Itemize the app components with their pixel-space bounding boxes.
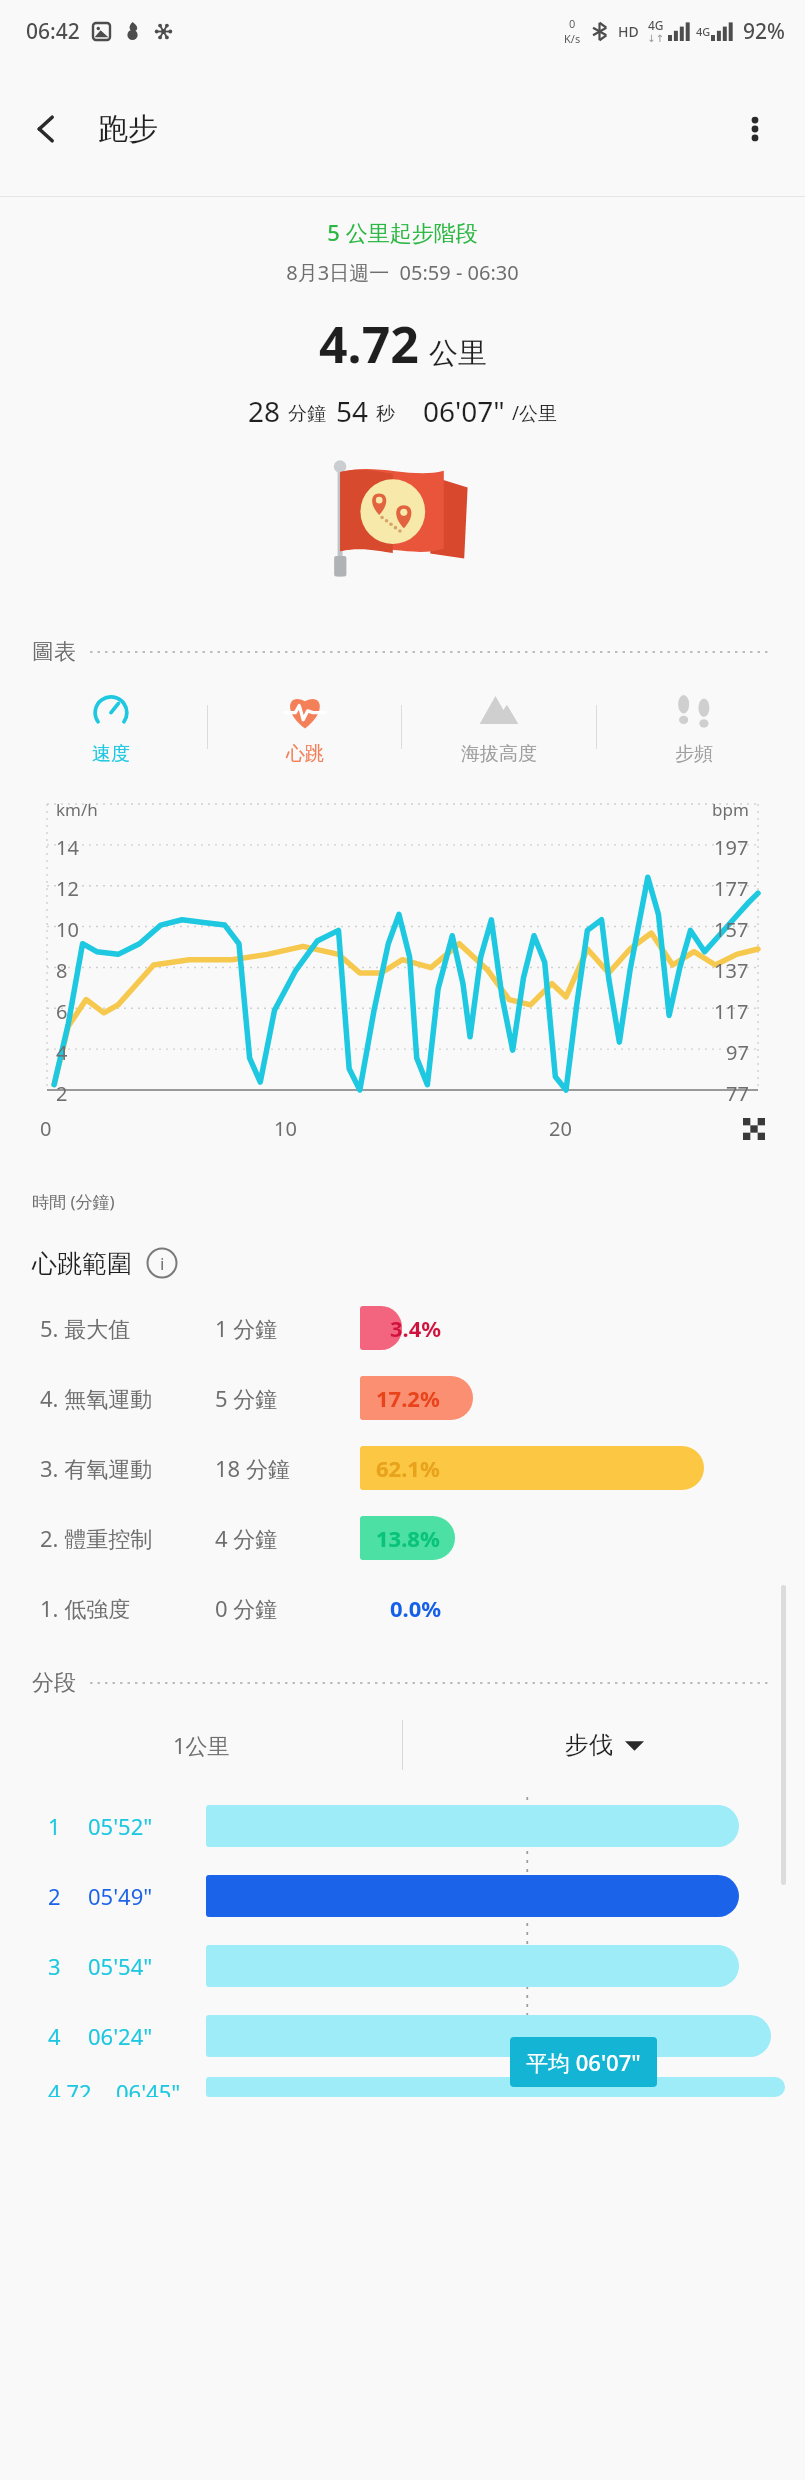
staticText: 54 xyxy=(336,392,369,430)
staticText: 0 分鐘 xyxy=(215,1593,360,1623)
staticText: 3 xyxy=(48,1951,88,1981)
staticText: ↓↑ xyxy=(647,33,664,45)
staticText: 62.1% xyxy=(376,1453,440,1483)
button[interactable]: 1公里 xyxy=(0,1705,402,1785)
staticText: 8月3日週一 05:59 - 06:30 xyxy=(0,259,805,286)
button[interactable]: Back xyxy=(16,99,76,159)
staticText: 4.72 xyxy=(319,310,419,378)
staticText: 0 xyxy=(40,1115,52,1142)
button[interactable]: 4 xyxy=(0,2007,805,2065)
staticText: 4.72 xyxy=(48,2077,116,2097)
staticText: 157 xyxy=(714,916,749,943)
staticText: 92% xyxy=(743,17,785,46)
staticText: 77 xyxy=(726,1080,749,1107)
button[interactable]: 海拔高度 xyxy=(402,682,596,772)
staticText: 速度 xyxy=(92,742,130,766)
staticText: 5. 最大值 xyxy=(40,1313,215,1343)
staticText: /公里 xyxy=(512,400,558,426)
staticText: 1 分鐘 xyxy=(215,1313,360,1343)
staticText: 4G xyxy=(648,17,664,33)
staticText: 05'49" xyxy=(88,1881,206,1911)
staticText: 137 xyxy=(714,957,749,984)
staticText: 177 xyxy=(714,875,749,902)
staticText: 06:42 xyxy=(26,17,80,46)
staticText: 5 分鐘 xyxy=(215,1383,360,1413)
staticText: 4 xyxy=(56,1039,68,1066)
button[interactable]: 速度 xyxy=(14,682,207,772)
staticText: 05'54" xyxy=(88,1951,206,1981)
staticText: 5 公里起步階段 xyxy=(0,217,805,247)
button[interactable]: 3 xyxy=(0,1937,805,1995)
staticText: 4 xyxy=(48,2021,88,2051)
staticText: 3.4% xyxy=(390,1313,442,1343)
staticText: 14 xyxy=(56,834,79,861)
staticText: 秒 xyxy=(376,402,395,426)
staticText: 05'52" xyxy=(88,1811,206,1841)
staticText: 2. 體重控制 xyxy=(40,1523,215,1553)
staticText: 2 xyxy=(56,1080,68,1107)
button[interactable]: 3. 有氧運動 xyxy=(0,1433,805,1503)
staticText: 分鐘 xyxy=(288,402,326,426)
button[interactable]: 1 xyxy=(0,1797,805,1855)
staticText: 117 xyxy=(714,998,749,1025)
staticText: 4G xyxy=(696,24,711,39)
staticText: K/s xyxy=(564,31,581,46)
staticText: km/h xyxy=(56,798,98,821)
staticText: 28 xyxy=(248,392,281,430)
button[interactable]: More options xyxy=(725,99,785,159)
staticText: 跑步 xyxy=(98,110,158,148)
button[interactable]: 4.72 xyxy=(0,2077,805,2097)
staticText: 2 xyxy=(48,1881,88,1911)
staticText: 心跳 xyxy=(286,742,324,766)
staticText: 6 xyxy=(56,998,68,1025)
staticText: 海拔高度 xyxy=(461,742,537,766)
staticText: 10 xyxy=(56,916,79,943)
staticText: 197 xyxy=(714,834,749,861)
staticText: 步頻 xyxy=(675,742,713,766)
button[interactable]: 步頻 xyxy=(597,682,791,772)
staticText: 06'07" xyxy=(423,392,505,430)
staticText: 97 xyxy=(726,1039,749,1066)
staticText: 8 xyxy=(56,957,68,984)
staticText: 3. 有氧運動 xyxy=(40,1453,215,1483)
staticText: i xyxy=(160,1252,165,1275)
staticText: 0 xyxy=(569,16,576,31)
button[interactable]: 5. 最大值 xyxy=(0,1293,805,1363)
button[interactable]: 2. 體重控制 xyxy=(0,1503,805,1573)
button[interactable]: 步伐 xyxy=(403,1705,805,1785)
button[interactable]: 平均 06'07" xyxy=(510,2037,657,2087)
staticText: 4. 無氧運動 xyxy=(40,1383,215,1413)
staticText: 1公里 xyxy=(173,1730,230,1760)
staticText: bpm xyxy=(712,798,749,821)
staticText: 17.2% xyxy=(376,1383,440,1413)
button[interactable]: 心跳 xyxy=(208,682,401,772)
staticText: 4 分鐘 xyxy=(215,1523,360,1553)
staticText: HD xyxy=(618,22,639,41)
button[interactable]: 2 xyxy=(0,1867,805,1925)
staticText: 06'45" xyxy=(116,2077,206,2097)
button[interactable]: Info xyxy=(146,1247,178,1279)
staticText: 20 xyxy=(549,1115,572,1142)
staticText: 18 分鐘 xyxy=(215,1453,360,1483)
button[interactable]: 1. 低強度 xyxy=(0,1573,805,1643)
staticText: 平均 06'07" xyxy=(526,2047,641,2077)
staticText: 分段 xyxy=(32,1669,76,1697)
staticText: 06'24" xyxy=(88,2021,206,2051)
staticText: 心跳範圍 xyxy=(32,1248,132,1279)
staticText: 公里 xyxy=(429,335,487,372)
staticText: 12 xyxy=(56,875,79,902)
staticText: 時間 (分鐘) xyxy=(32,1190,115,1213)
staticText: 圖表 xyxy=(32,638,76,666)
staticText: 1. 低強度 xyxy=(40,1593,215,1623)
staticText: 10 xyxy=(274,1115,297,1142)
staticText: 1 xyxy=(48,1811,88,1841)
staticText: 步伐 xyxy=(565,1730,613,1760)
button[interactable]: 4. 無氧運動 xyxy=(0,1363,805,1433)
staticText: 13.8% xyxy=(376,1523,440,1553)
staticText: 0.0% xyxy=(390,1593,442,1623)
